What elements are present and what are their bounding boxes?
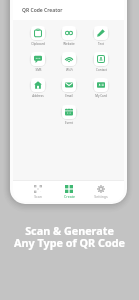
staticText: Clipboard: [31, 42, 45, 46]
button[interactable]: SMS: [21, 52, 55, 72]
button[interactable]: Settings: [84, 185, 118, 199]
button[interactable]: Website: [52, 26, 86, 46]
staticText: QR Code Creator: [22, 7, 63, 14]
staticText: Wi-Fi: [66, 68, 73, 72]
staticText: Email: [65, 94, 73, 98]
staticText: Create: [64, 194, 75, 199]
staticText: Scan & Generate Any Type of QR Code: [14, 223, 125, 250]
staticText: Website: [63, 42, 75, 46]
staticText: Event: [65, 121, 73, 125]
button[interactable]: Address: [21, 78, 55, 98]
button[interactable]: Clipboard: [21, 26, 55, 46]
button[interactable]: My Card: [84, 78, 118, 98]
staticText: Scan: [34, 194, 42, 199]
button[interactable]: Email: [52, 78, 86, 98]
staticText: Contact: [96, 68, 107, 72]
button[interactable]: Event: [52, 105, 86, 125]
button[interactable]: Text: [84, 26, 118, 46]
staticText: Address: [32, 94, 44, 98]
button[interactable]: Create: [52, 185, 86, 199]
staticText: Settings: [94, 194, 108, 199]
button[interactable]: Scan: [21, 185, 55, 199]
button[interactable]: Contact: [84, 52, 118, 72]
button[interactable]: Wi-Fi: [52, 52, 86, 72]
staticText: My Card: [95, 94, 107, 98]
staticText: SMS: [35, 68, 42, 72]
staticText: Text: [98, 42, 104, 46]
